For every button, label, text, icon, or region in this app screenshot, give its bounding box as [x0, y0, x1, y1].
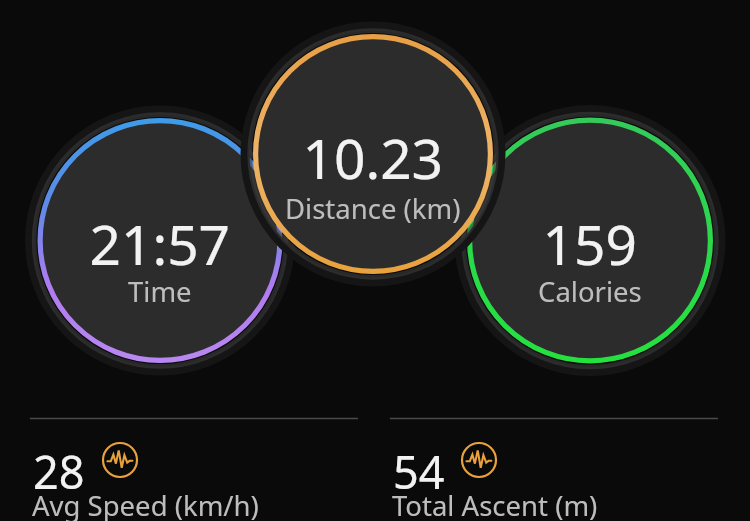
button[interactable]: Total Ascent 54 metres [0, 0, 750, 521]
other: Workout summary metrics [0, 0, 750, 521]
button[interactable]: Avg Speed 28 kilometres per hour [0, 0, 750, 521]
